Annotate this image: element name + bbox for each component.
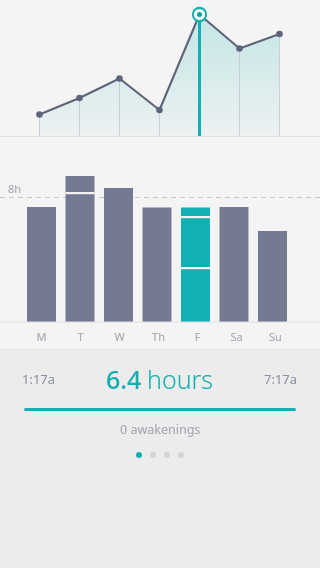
- staticText: Sa: [222, 329, 251, 344]
- button[interactable]: Page 4: [178, 452, 184, 458]
- staticText: F: [183, 329, 212, 344]
- staticText: 0 awakenings: [120, 421, 201, 438]
- button[interactable]: 0 awakenings: [0, 411, 320, 447]
- staticText: 7:17a: [264, 370, 298, 388]
- staticText: 8h: [8, 181, 22, 196]
- staticText: W: [105, 329, 134, 344]
- button[interactable]: 1:17a: [0, 350, 320, 408]
- button[interactable]: Page 2: [150, 452, 156, 458]
- staticText: hours: [147, 362, 214, 396]
- staticText: M: [27, 329, 56, 344]
- staticText: Su: [261, 329, 290, 344]
- button[interactable]: Page 3: [164, 452, 170, 458]
- staticText: 6.4: [106, 362, 142, 396]
- staticText: Th: [144, 329, 173, 344]
- staticText: 1:17a: [22, 370, 56, 388]
- staticText: T: [66, 329, 95, 344]
- button[interactable]: Page 1: [136, 452, 142, 458]
